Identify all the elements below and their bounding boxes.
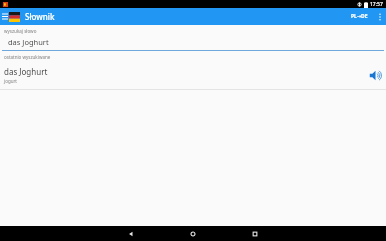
staticText: das Joghurt	[4, 66, 48, 77]
button[interactable]: Back	[100, 226, 162, 241]
button[interactable]: Open navigation drawer	[0, 8, 9, 25]
staticText: Słownik	[25, 11, 55, 22]
button[interactable]: Recent apps	[224, 226, 286, 241]
button[interactable]: das Joghurt	[0, 37, 386, 47]
staticText: 17:57	[370, 1, 383, 8]
button[interactable]: More options	[374, 8, 386, 25]
button[interactable]: Home	[162, 226, 224, 241]
button[interactable]: PL→DE	[347, 10, 372, 23]
staticText: ostatnio wyszukiwane	[4, 54, 51, 60]
button[interactable]: Play pronunciation	[364, 64, 386, 86]
staticText: jogurt	[4, 78, 17, 84]
button[interactable]: das Joghurt	[0, 64, 386, 86]
staticText: das Joghurt	[8, 37, 49, 47]
staticText: wyszukaj słowo	[4, 28, 37, 34]
staticText: PL→DE	[351, 13, 368, 20]
